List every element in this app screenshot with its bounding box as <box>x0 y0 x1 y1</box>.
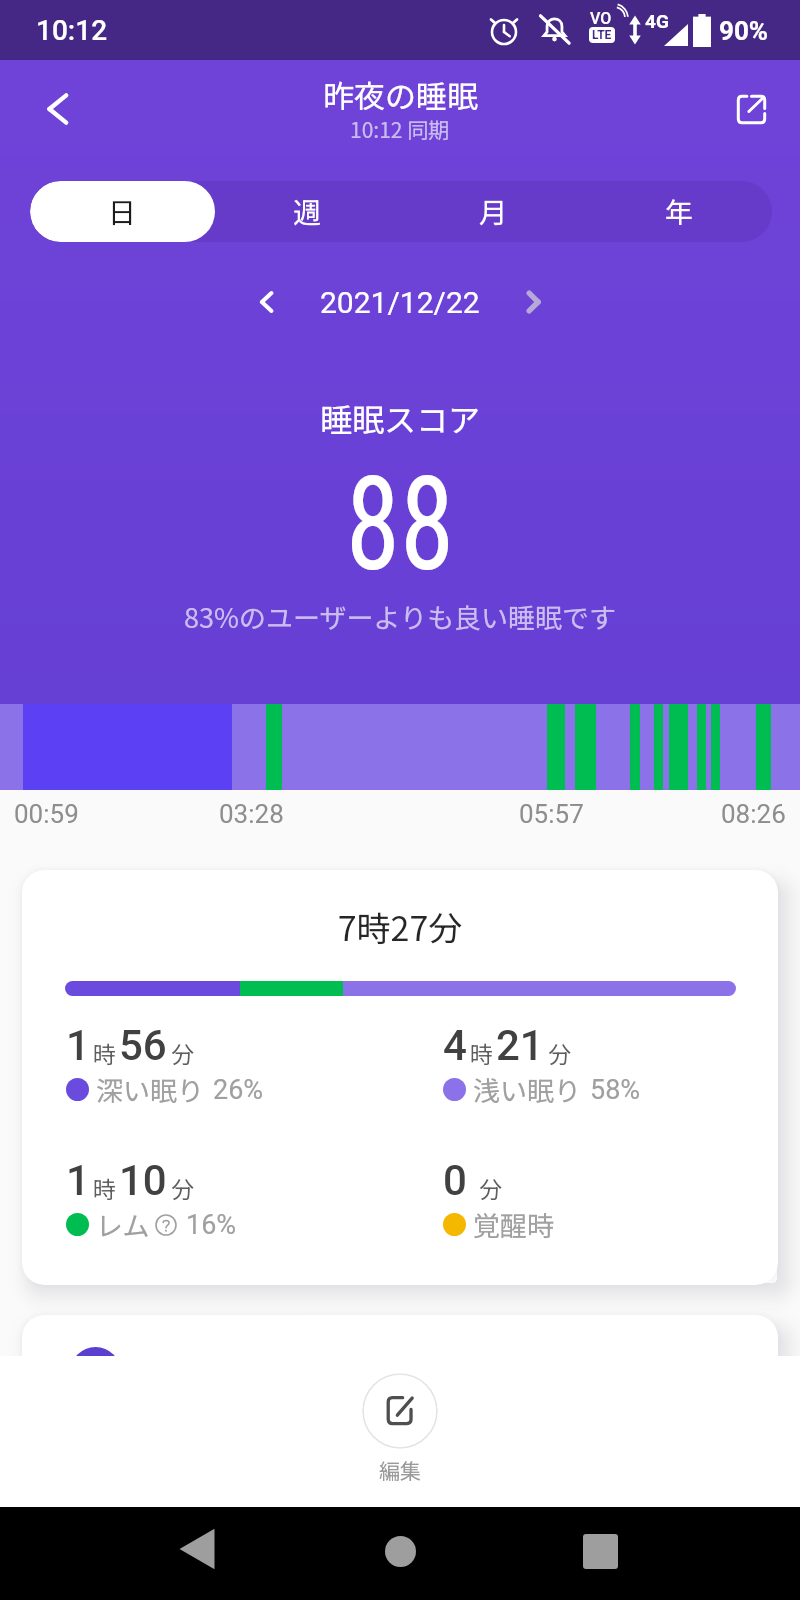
staticText: 83%のユーザーよりも良い睡眠です <box>0 597 800 636</box>
staticText: 21 <box>496 1021 544 1070</box>
staticText: 58% <box>590 1074 641 1106</box>
button[interactable]: 週 <box>215 181 400 242</box>
staticText: 7時27分 <box>22 902 778 951</box>
staticText: 08:26 <box>721 799 786 829</box>
staticText: 睡眠スコア <box>0 395 800 441</box>
staticText: 56 <box>119 1021 167 1070</box>
staticText: 4G <box>645 10 669 32</box>
staticText: 10:12 同期 <box>350 114 450 144</box>
staticText: 浅い眠り <box>473 1070 581 1109</box>
staticText: 時 <box>93 1171 116 1204</box>
button[interactable]: Next day <box>506 275 560 329</box>
button[interactable]: Recents <box>572 1523 628 1579</box>
staticText: 分 <box>171 1036 194 1069</box>
staticText: 1 <box>66 1156 90 1205</box>
button[interactable]: Back <box>28 78 90 140</box>
button[interactable]: 年 <box>586 181 772 242</box>
staticText: 年 <box>665 191 694 232</box>
staticText: 月 <box>479 191 508 232</box>
staticText: 日 <box>108 191 137 232</box>
staticText: 分 <box>479 1171 502 1204</box>
staticText: 深い眠り <box>96 1070 204 1109</box>
staticText: 10:12 <box>36 14 108 47</box>
button[interactable]: 編集 <box>362 1373 438 1449</box>
staticText: 4 <box>443 1021 467 1070</box>
staticText: 編集 <box>379 1455 421 1485</box>
staticText: VO <box>590 9 612 28</box>
staticText: 03:28 <box>219 799 284 829</box>
staticText: 0 <box>443 1156 467 1205</box>
button[interactable]: Previous day <box>240 275 294 329</box>
staticText: 10 <box>119 1156 167 1205</box>
staticText: 分 <box>548 1036 571 1069</box>
button[interactable]: Home <box>372 1523 428 1579</box>
button[interactable]: Back <box>167 1519 227 1579</box>
staticText: 00:59 <box>14 799 79 829</box>
button[interactable]: Share <box>719 77 783 141</box>
staticText: 時 <box>93 1036 116 1069</box>
button[interactable]: 月 <box>400 181 586 242</box>
staticText: 昨夜の睡眠 <box>323 72 478 117</box>
staticText: 88 <box>62 448 738 600</box>
staticText: 時 <box>470 1036 493 1069</box>
staticText: 90% <box>719 16 769 46</box>
staticText: 16% <box>186 1209 237 1241</box>
staticText: 週 <box>293 191 322 232</box>
staticText: 26% <box>213 1074 264 1106</box>
staticText: 05:57 <box>519 799 584 829</box>
staticText: 2021/12/22 <box>320 285 480 320</box>
staticText: レム <box>96 1205 150 1244</box>
staticText: LTE <box>592 28 612 42</box>
staticText: 分 <box>171 1171 194 1204</box>
staticText: 覚醒時 <box>473 1205 554 1244</box>
button[interactable]: 日 <box>30 181 215 242</box>
staticText: 1 <box>66 1021 90 1070</box>
